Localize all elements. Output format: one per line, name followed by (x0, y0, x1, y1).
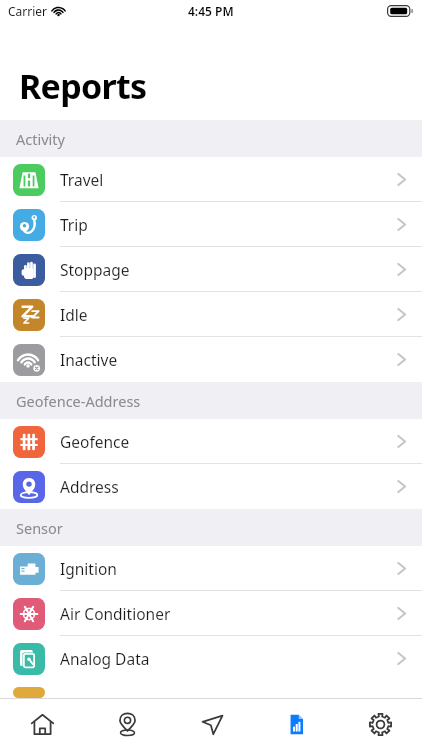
button[interactable]: Geofence (0, 419, 422, 464)
staticText: Carrier (8, 3, 48, 19)
button[interactable]: Reports (254, 699, 338, 750)
button[interactable]: Places (85, 699, 170, 750)
staticText: Address (60, 476, 119, 497)
button[interactable]: Navigate (170, 699, 254, 750)
button[interactable]: Ignition (0, 546, 422, 591)
button[interactable] (0, 681, 422, 698)
button[interactable]: Settings (338, 699, 422, 750)
staticText: Geofence-Address (16, 391, 141, 411)
staticText: Trip (60, 214, 88, 235)
staticText: 4:45 PM (188, 3, 234, 19)
button[interactable]: Address (0, 464, 422, 509)
button[interactable]: Travel (0, 157, 422, 202)
staticText: Stoppage (60, 259, 130, 280)
staticText: Air Conditioner (60, 603, 171, 624)
button[interactable]: Home (0, 699, 85, 750)
staticText: Reports (19, 63, 147, 109)
staticText: Inactive (60, 349, 118, 370)
button[interactable]: Air Conditioner (0, 591, 422, 636)
staticText: Travel (60, 169, 104, 190)
button[interactable]: Trip (0, 202, 422, 247)
button[interactable]: Inactive (0, 337, 422, 382)
button[interactable]: Analog Data (0, 636, 422, 681)
staticText: Idle (60, 304, 88, 325)
staticText: Sensor (16, 518, 63, 538)
button[interactable]: Idle (0, 292, 422, 337)
staticText: Analog Data (60, 648, 150, 669)
staticText: Activity (16, 129, 65, 149)
button[interactable]: Stoppage (0, 247, 422, 292)
staticText: Geofence (60, 431, 130, 452)
staticText: Ignition (60, 558, 117, 579)
